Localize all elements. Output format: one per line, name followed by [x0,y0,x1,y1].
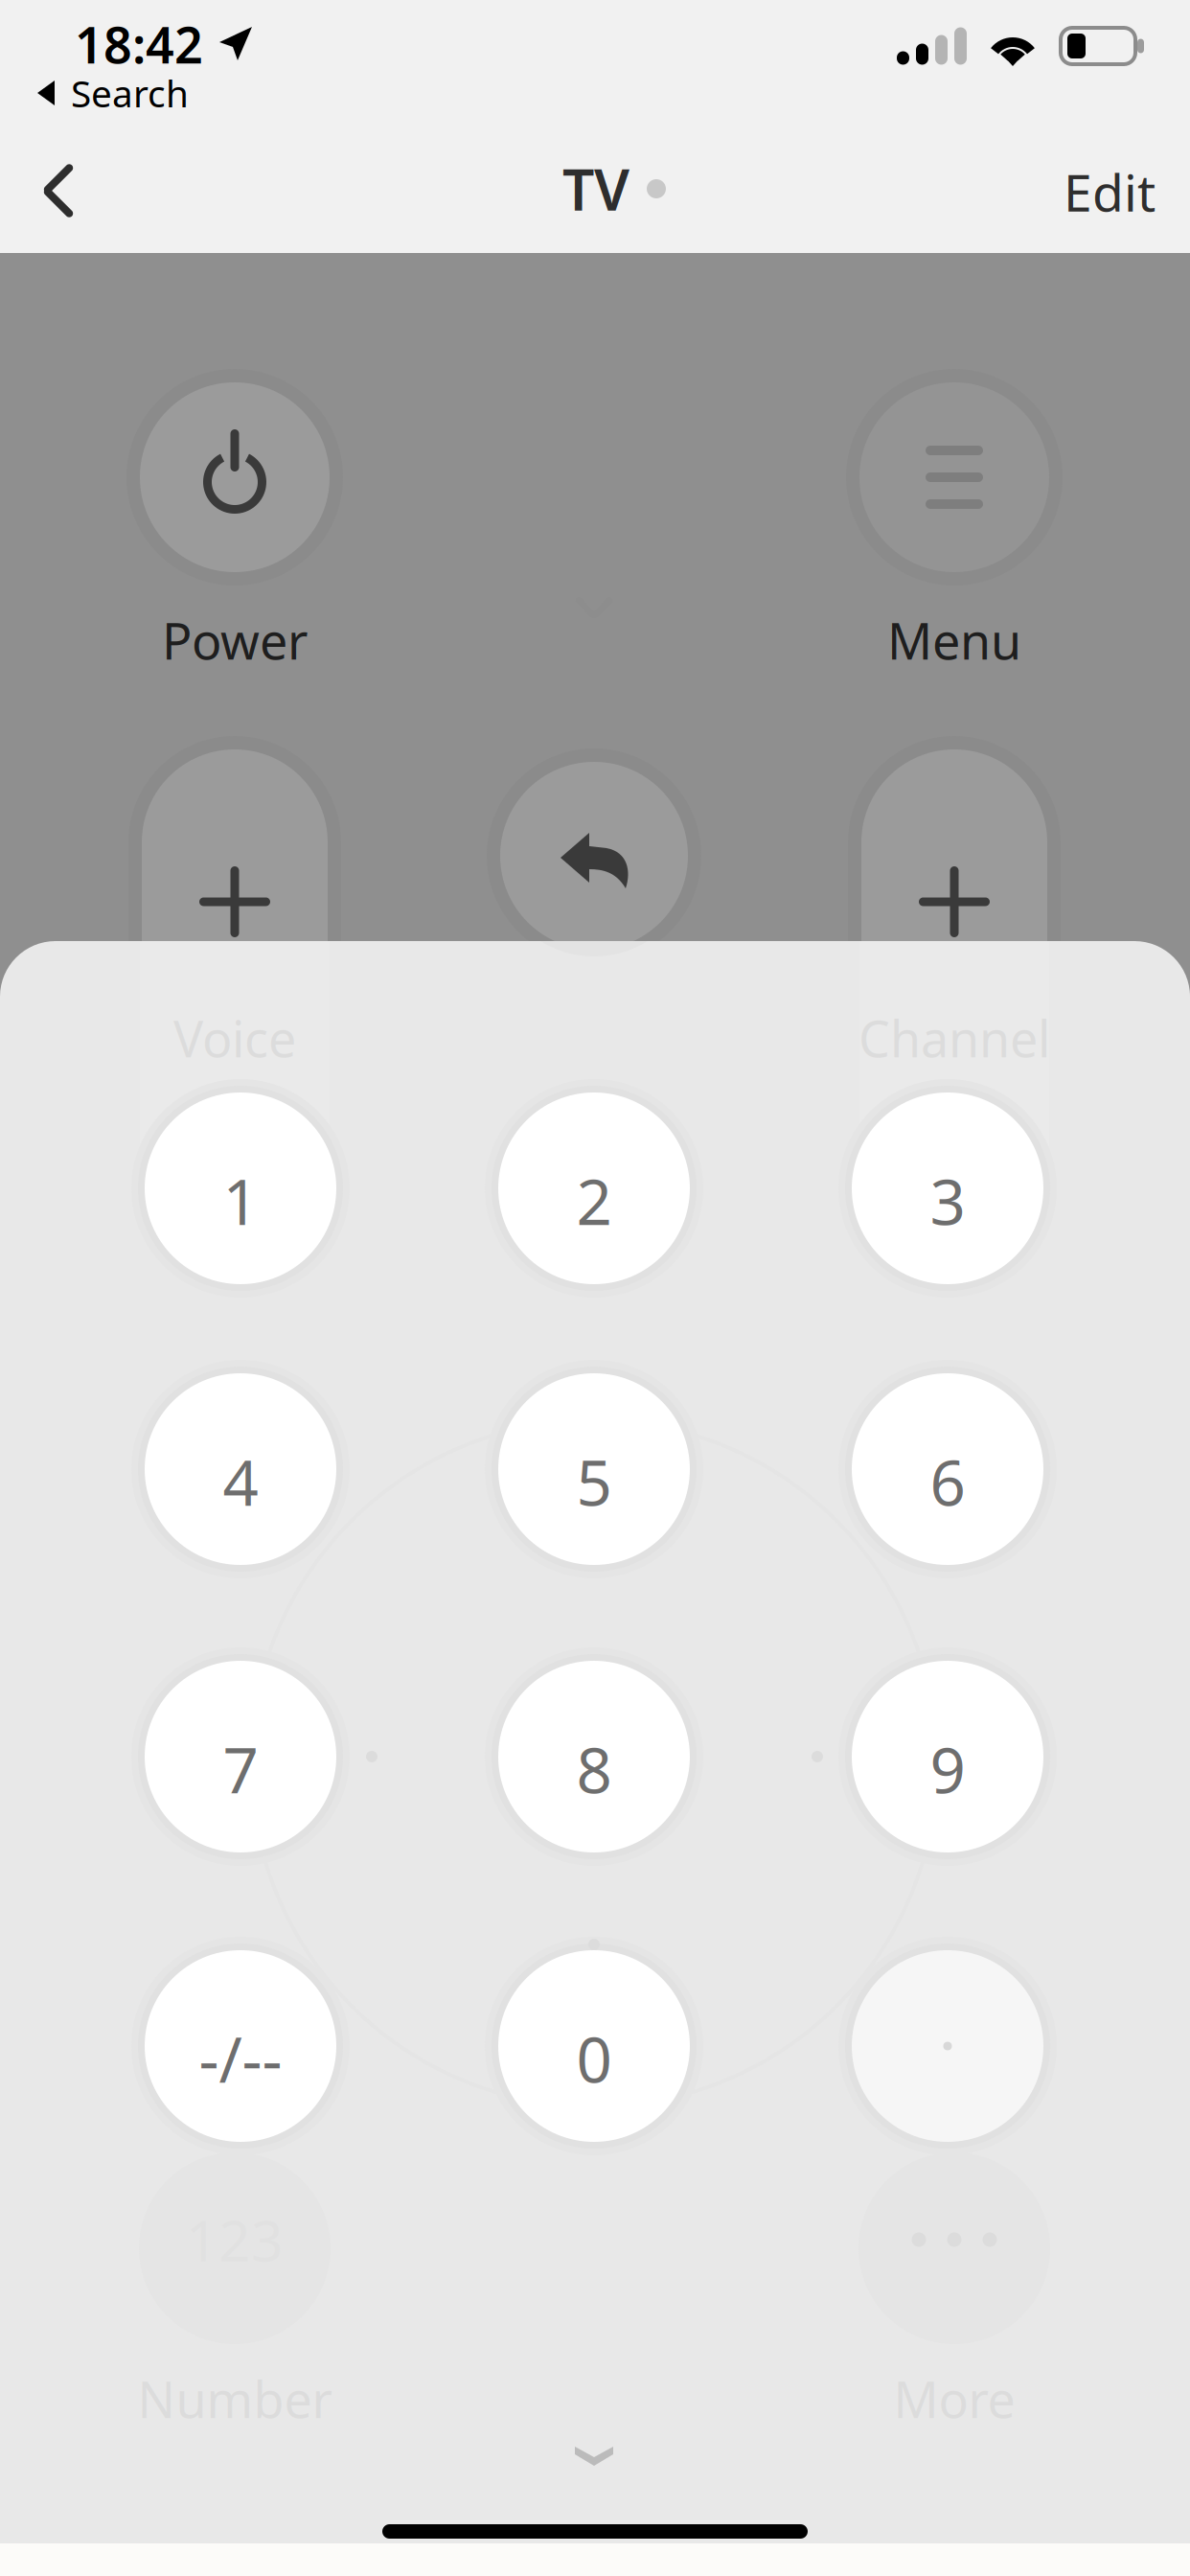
button[interactable]: 7 [131,1647,350,1866]
staticText: 18:42 [75,11,203,77]
button[interactable]: 5 [485,1360,703,1578]
button[interactable]: 4 [131,1360,350,1578]
staticText: More [893,2366,1015,2432]
staticText: 4 [223,1440,258,1523]
button[interactable]: 1 [131,1079,350,1298]
staticText: 5 [576,1440,612,1523]
staticText: -/-- [199,2017,282,2100]
button[interactable]: Edit [1002,138,1190,245]
staticText: 1 [223,1159,258,1242]
staticText: Voice [173,1005,296,1071]
staticText: 2 [576,1159,612,1242]
staticText: 9 [930,1727,965,1811]
button[interactable]: 8 [485,1647,703,1866]
staticText: Number [137,2366,332,2432]
staticText: TV [562,151,629,226]
staticText: Power [162,607,308,673]
button[interactable] [838,1937,1057,2155]
button[interactable]: Search [33,70,193,116]
button[interactable]: 9 [838,1647,1057,1866]
button[interactable]: 6 [838,1360,1057,1578]
button[interactable]: Collapse keypad [517,2403,671,2509]
staticText: 7 [223,1727,258,1811]
staticText: Search [71,68,189,117]
button[interactable]: Back [6,137,111,244]
staticText: Edit [1064,158,1156,226]
button[interactable]: 0 [485,1937,703,2155]
staticText: 8 [576,1727,612,1811]
staticText: Menu [887,607,1021,673]
staticText: 6 [930,1440,965,1523]
staticText: 3 [930,1159,965,1242]
staticText: 0 [576,2017,612,2100]
button[interactable]: 3 [838,1079,1057,1298]
button[interactable]: 2 [485,1079,703,1298]
button[interactable]: -/-- [131,1937,350,2155]
staticText: Channel [858,1005,1050,1071]
